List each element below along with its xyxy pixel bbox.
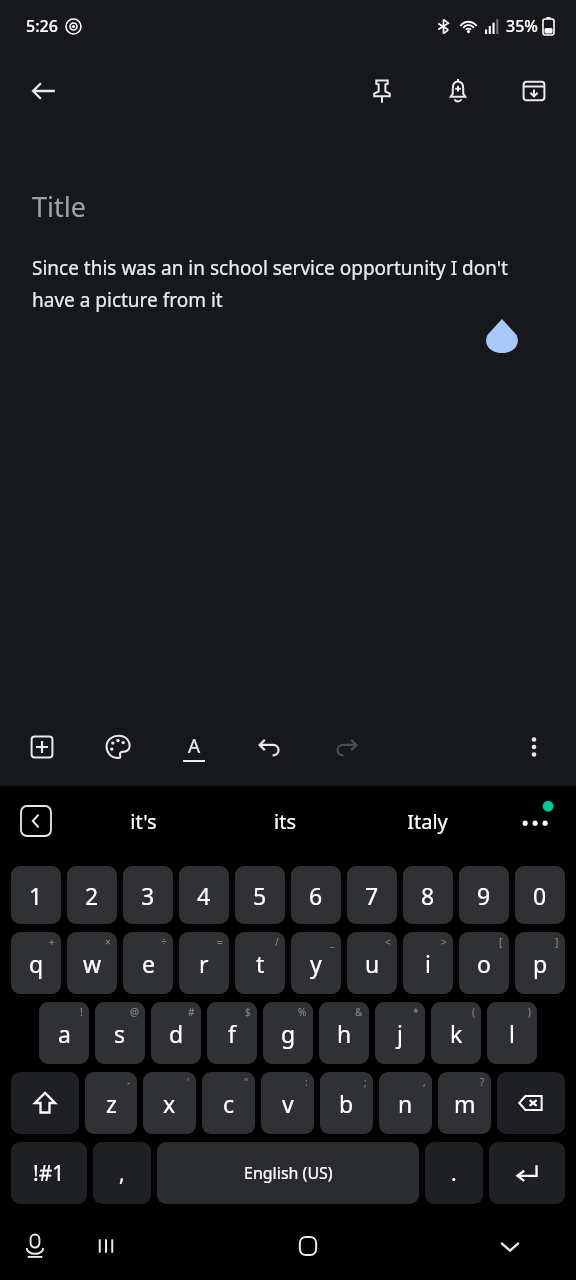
button[interactable]: m xyxy=(438,1072,491,1134)
staticText: 9 xyxy=(477,880,491,911)
staticText: * xyxy=(413,1005,419,1019)
staticText: A xyxy=(188,733,201,759)
button[interactable]: d xyxy=(151,1002,201,1064)
button[interactable]: its xyxy=(214,786,356,856)
button[interactable]: n xyxy=(379,1072,432,1134)
button[interactable]: Italy xyxy=(356,786,498,856)
button[interactable]: 6 xyxy=(291,866,341,924)
button[interactable]: q xyxy=(11,932,61,994)
button[interactable]: j xyxy=(375,1002,425,1064)
staticText: English (US) xyxy=(244,1162,333,1184)
staticText: t xyxy=(256,948,265,979)
button[interactable]: z xyxy=(85,1072,137,1134)
button[interactable]: it's xyxy=(72,786,214,856)
button[interactable]: c xyxy=(202,1072,255,1134)
button[interactable]: h xyxy=(319,1002,369,1064)
button[interactable]: v xyxy=(261,1072,314,1134)
staticText: n xyxy=(398,1088,413,1119)
button[interactable]: 5 xyxy=(235,866,285,924)
staticText: !#1 xyxy=(33,1159,65,1188)
button[interactable]: Archive xyxy=(510,67,558,115)
button[interactable]: y xyxy=(291,932,341,994)
staticText: < xyxy=(385,935,391,949)
button[interactable]: b xyxy=(320,1072,373,1134)
button[interactable]: 0 xyxy=(515,866,565,924)
staticText: z xyxy=(106,1088,117,1119)
button[interactable]: More keyboard options xyxy=(514,799,558,843)
staticText: + xyxy=(49,935,55,949)
staticText: , xyxy=(423,1075,426,1089)
button[interactable]: Pin note xyxy=(358,67,406,115)
staticText: b xyxy=(339,1088,354,1119)
button[interactable]: Undo xyxy=(246,723,294,771)
staticText: v xyxy=(282,1088,294,1119)
staticText: k xyxy=(450,1018,463,1049)
button[interactable]: i xyxy=(403,932,453,994)
staticText: g xyxy=(281,1018,296,1049)
staticText: a xyxy=(58,1018,71,1049)
staticText: % xyxy=(298,1005,307,1019)
button[interactable]: l xyxy=(487,1002,537,1064)
staticText: it's xyxy=(130,808,157,835)
staticText: _ xyxy=(330,935,335,949)
staticText: ' xyxy=(187,1075,190,1089)
staticText: d xyxy=(169,1018,184,1049)
button[interactable]: Recents xyxy=(80,1220,132,1272)
button[interactable]: , xyxy=(93,1142,151,1204)
button[interactable]: x xyxy=(143,1072,196,1134)
button[interactable]: g xyxy=(263,1002,313,1064)
button[interactable]: 7 xyxy=(347,866,397,924)
button[interactable]: o xyxy=(459,932,509,994)
button[interactable]: a xyxy=(39,1002,89,1064)
button[interactable]: 3 xyxy=(123,866,173,924)
button[interactable]: Text formatting xyxy=(170,723,218,771)
button[interactable]: More options xyxy=(510,723,558,771)
button[interactable]: t xyxy=(235,932,285,994)
staticText: ( xyxy=(472,1005,475,1019)
button[interactable]: Back xyxy=(20,67,68,115)
staticText: l xyxy=(509,1018,515,1049)
button[interactable]: Add reminder xyxy=(434,67,482,115)
button[interactable]: Hide keyboard xyxy=(484,1220,536,1272)
button[interactable]: w xyxy=(67,932,117,994)
staticText: ! xyxy=(80,1005,83,1019)
staticText: x xyxy=(163,1088,176,1119)
staticText: p xyxy=(533,948,548,979)
button[interactable]: Previous suggestions xyxy=(20,805,52,837)
staticText: f xyxy=(228,1018,236,1049)
staticText: m xyxy=(454,1088,476,1119)
button[interactable]: 9 xyxy=(459,866,509,924)
staticText: u xyxy=(365,948,380,979)
staticText: Since this was an in school service oppo… xyxy=(32,255,544,313)
button[interactable]: 2 xyxy=(67,866,117,924)
button[interactable]: p xyxy=(515,932,565,994)
button[interactable]: Home xyxy=(282,1220,334,1272)
button[interactable]: f xyxy=(207,1002,257,1064)
button[interactable]: Enter xyxy=(489,1142,565,1204)
button[interactable]: . xyxy=(425,1142,483,1204)
button[interactable]: !#1 xyxy=(11,1142,87,1204)
staticText: / xyxy=(275,935,279,949)
button[interactable]: 1 xyxy=(11,866,61,924)
staticText: [ xyxy=(499,935,503,949)
staticText: " xyxy=(244,1075,249,1089)
staticText: 1 xyxy=(29,880,43,911)
button[interactable]: s xyxy=(95,1002,145,1064)
button[interactable]: k xyxy=(431,1002,481,1064)
button[interactable]: Voice input xyxy=(12,1223,58,1269)
button[interactable]: Change color xyxy=(94,723,142,771)
button[interactable]: 8 xyxy=(403,866,453,924)
button[interactable]: u xyxy=(347,932,397,994)
button[interactable]: 4 xyxy=(179,866,229,924)
staticText: Title xyxy=(32,188,86,225)
staticText: $ xyxy=(245,1005,251,1019)
staticText: ; xyxy=(364,1075,367,1089)
button[interactable]: Shift xyxy=(11,1072,79,1134)
button[interactable]: r xyxy=(179,932,229,994)
staticText: w xyxy=(83,948,102,979)
button[interactable]: Add attachment xyxy=(18,723,66,771)
button[interactable]: e xyxy=(123,932,173,994)
button[interactable]: English (US) xyxy=(157,1142,419,1204)
button[interactable]: Redo xyxy=(322,723,370,771)
button[interactable]: Backspace xyxy=(497,1072,565,1134)
